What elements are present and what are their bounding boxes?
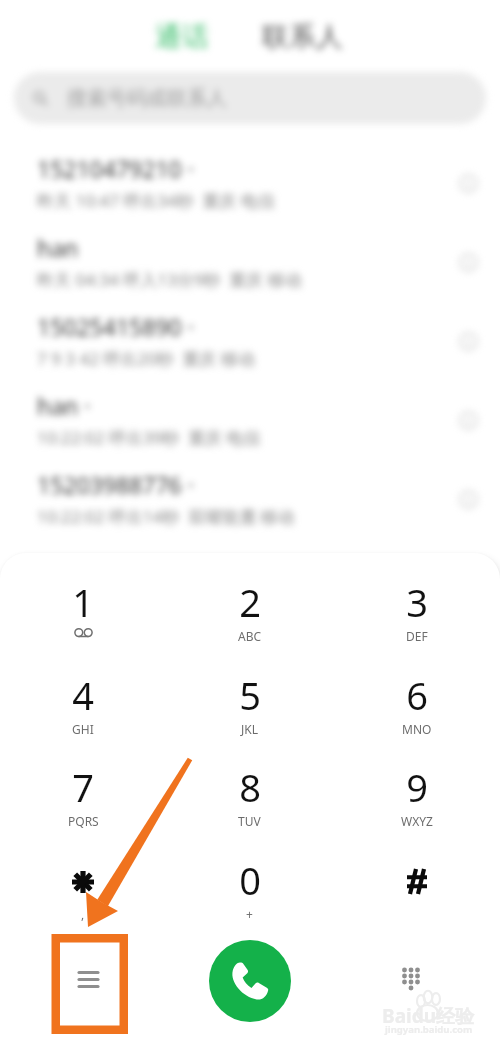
staticText: jingyan.baidu.com xyxy=(385,1023,473,1036)
staticText: 3 xyxy=(406,576,428,628)
button[interactable]: 4 xyxy=(0,650,166,742)
staticText: 15203988776 · xyxy=(37,469,194,500)
button[interactable]: Call xyxy=(209,940,291,1022)
staticText: 1 xyxy=(72,576,94,628)
staticText: ABC xyxy=(238,628,262,644)
button[interactable]: Menu xyxy=(51,942,125,1016)
staticText: 10:22:02 呼出14秒 双曜龍麓 移动 xyxy=(37,505,295,528)
staticText: 0 xyxy=(239,854,261,906)
staticText: TUV xyxy=(238,813,261,829)
button[interactable]: 7 xyxy=(0,742,166,834)
button[interactable] xyxy=(333,835,500,927)
staticText: + xyxy=(246,906,253,922)
staticText: 7 xyxy=(72,761,94,813)
button[interactable]: Call details xyxy=(451,245,485,279)
button[interactable]: 2 xyxy=(166,557,333,649)
button[interactable]: 搜索号码或联系人 xyxy=(14,72,486,124)
button[interactable]: 5 xyxy=(166,650,333,742)
button[interactable]: 通话 xyxy=(141,14,223,60)
staticText: 搜索号码或联系人 xyxy=(67,86,227,111)
staticText: WXYZ xyxy=(401,813,433,829)
staticText: han xyxy=(37,232,79,263)
staticText: 15025415890 · xyxy=(37,311,194,342)
button[interactable]: 3 xyxy=(333,557,500,649)
staticText: 9 xyxy=(406,761,428,813)
button[interactable]: han · xyxy=(0,380,500,459)
staticText: PQRS xyxy=(68,813,99,829)
staticText: 10:22:02 呼出39秒 重庆 电信 xyxy=(37,426,261,449)
button[interactable]: 15025415890 · xyxy=(0,301,500,380)
button[interactable]: Call details xyxy=(451,324,485,358)
button[interactable]: 15203988776 · xyxy=(0,459,500,538)
staticText: 5 xyxy=(239,669,261,721)
staticText: JKL xyxy=(241,721,258,737)
button[interactable]: 8 xyxy=(166,742,333,834)
staticText: DEF xyxy=(406,628,428,644)
staticText: 昨天 04:34 呼入13分9秒 重庆 移动 xyxy=(37,268,302,291)
button[interactable]: Call details xyxy=(451,482,485,516)
staticText: 2 xyxy=(239,576,261,628)
staticText: GHI xyxy=(72,721,94,737)
button[interactable]: 联系人 xyxy=(248,14,357,60)
staticText: MNO xyxy=(402,721,432,737)
button[interactable]: Call details xyxy=(451,403,485,437)
button[interactable]: Dialpad xyxy=(380,948,442,1010)
button[interactable]: 15210479210 · xyxy=(0,143,500,222)
button[interactable]: Call details xyxy=(451,166,485,200)
staticText: 通话 xyxy=(155,20,209,54)
staticText: 4 xyxy=(72,669,94,721)
button[interactable]: han xyxy=(0,222,500,301)
button[interactable]: , xyxy=(0,835,166,927)
staticText: 联系人 xyxy=(262,20,343,54)
staticText: , xyxy=(81,906,85,922)
button[interactable]: 6 xyxy=(333,650,500,742)
staticText: han · xyxy=(37,390,91,421)
button[interactable]: 0 xyxy=(166,835,333,927)
staticText: 6 xyxy=(406,669,428,721)
staticText: Baidu经验 xyxy=(382,1003,475,1029)
staticText: 8 xyxy=(239,761,261,813)
staticText: 7 9 3 42 呼出20秒 重庆 移动 xyxy=(37,347,256,370)
button[interactable]: 1 xyxy=(0,557,166,649)
staticText: 昨天 10:47 呼出34秒 重庆 电信 xyxy=(37,189,275,212)
button[interactable]: 9 xyxy=(333,742,500,834)
staticText: 15210479210 · xyxy=(37,153,194,184)
